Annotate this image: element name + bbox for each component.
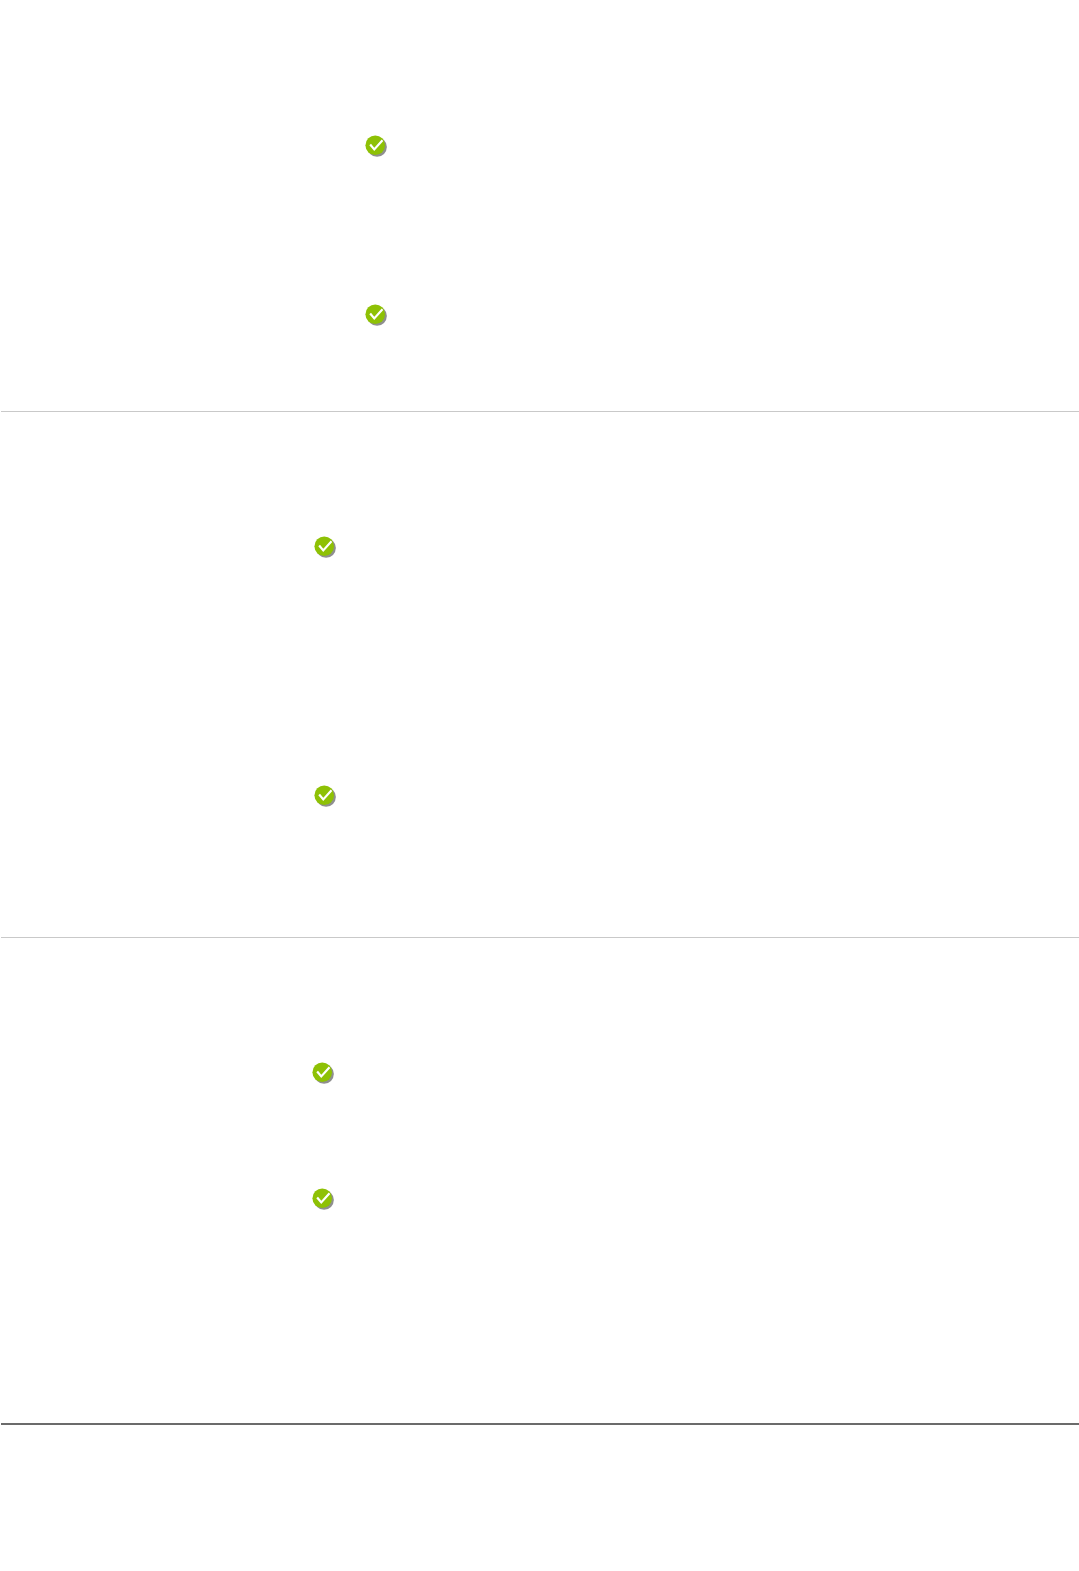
button[interactable]: Verified — [314, 785, 338, 809]
button[interactable]: Verified — [312, 1188, 336, 1212]
button[interactable]: Verified — [365, 304, 389, 328]
button[interactable]: Verified — [314, 536, 338, 560]
button[interactable]: Verified — [365, 135, 389, 159]
button[interactable]: Verified — [312, 1062, 336, 1086]
